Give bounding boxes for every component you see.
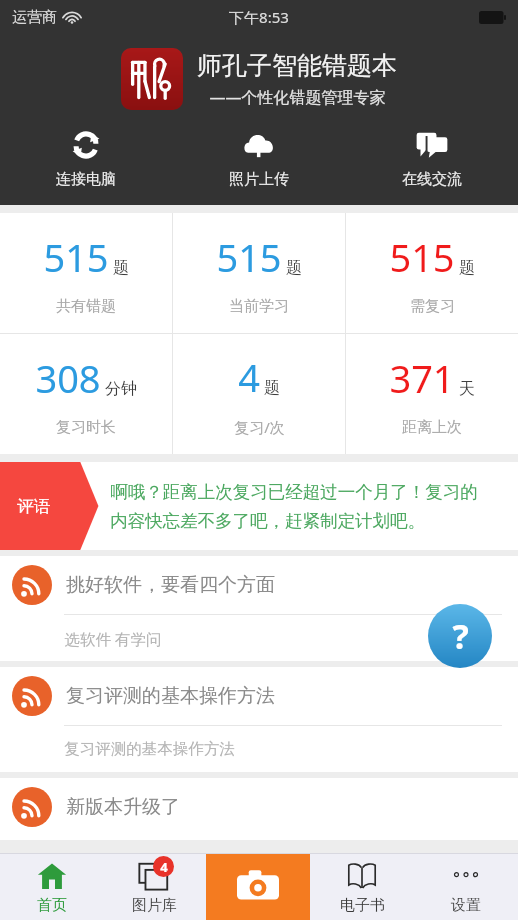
button[interactable]: 设置 (414, 854, 518, 920)
staticText: 4 (238, 351, 260, 403)
staticText: 连接电脑 (56, 170, 116, 189)
button[interactable]: 帮助 (428, 604, 492, 668)
staticText: 师孔子智能错题本 (197, 50, 397, 81)
button[interactable]: 连接电脑 (0, 126, 172, 191)
staticText: 距离上次 (402, 418, 462, 437)
staticText: 题 (459, 258, 475, 278)
staticText: 复习/次 (234, 417, 285, 437)
button[interactable]: 515 (0, 213, 172, 333)
button[interactable]: 515 (173, 213, 345, 333)
staticText: 复习评测的基本操作方法 (66, 684, 275, 708)
other: 在线交流 (416, 129, 448, 161)
button[interactable]: 复习评测的基本操作方法 (0, 667, 518, 772)
other: 照片上传 (243, 129, 275, 161)
staticText: 共有错题 (56, 297, 116, 316)
staticText: 评语 (17, 496, 51, 517)
staticText: 图片库 (132, 896, 177, 915)
staticText: 分钟 (105, 379, 137, 399)
button[interactable]: 首页 (0, 854, 103, 920)
staticText: 题 (286, 258, 302, 278)
staticText: 515 (216, 231, 282, 283)
button[interactable]: 挑好软件，要看四个方面 (0, 556, 518, 661)
staticText: 308 (35, 352, 101, 404)
button[interactable]: 4 (173, 334, 345, 454)
staticText: 照片上传 (229, 170, 289, 189)
staticText: 啊哦？距离上次复习已经超过一个月了！复习的 (110, 481, 478, 503)
staticText: 首页 (37, 896, 67, 915)
staticText: 371 (389, 352, 455, 404)
staticText: 天 (459, 379, 475, 399)
button[interactable]: 拍照 (206, 854, 310, 920)
staticText: 新版本升级了 (66, 795, 180, 819)
button[interactable]: 515 (346, 213, 518, 333)
other: 连接电脑 (71, 130, 101, 160)
button[interactable]: 在线交流 (345, 126, 518, 191)
staticText: 复习时长 (56, 418, 116, 437)
button[interactable]: 电子书 (310, 854, 414, 920)
button[interactable]: 371 (346, 334, 518, 454)
staticText: 选软件 有学问 (64, 628, 162, 649)
staticText: 设置 (451, 896, 481, 915)
staticText: 题 (264, 378, 280, 398)
staticText: 内容快忘差不多了吧，赶紧制定计划吧。 (110, 510, 425, 532)
staticText: 515 (43, 231, 109, 283)
button[interactable]: 4 (103, 854, 206, 920)
staticText: 电子书 (340, 896, 385, 915)
button[interactable]: 308 (0, 334, 172, 454)
staticText: 4 (160, 858, 168, 876)
staticText: 当前学习 (229, 297, 289, 316)
staticText: 挑好软件，要看四个方面 (66, 573, 275, 597)
button[interactable]: 评语 (0, 462, 518, 550)
button[interactable]: 新版本升级了 (0, 778, 518, 840)
staticText: ——个性化错题管理专家 (209, 86, 386, 108)
staticText: 复习评测的基本操作方法 (64, 739, 235, 759)
staticText: 需复习 (410, 297, 455, 316)
staticText: 运营商 (12, 8, 57, 27)
staticText: 515 (389, 231, 455, 283)
staticText: 在线交流 (402, 170, 462, 189)
button[interactable]: 照片上传 (172, 126, 345, 191)
staticText: 下午8:53 (229, 7, 289, 27)
staticText: 题 (113, 258, 129, 278)
staticText: ? (452, 613, 469, 659)
